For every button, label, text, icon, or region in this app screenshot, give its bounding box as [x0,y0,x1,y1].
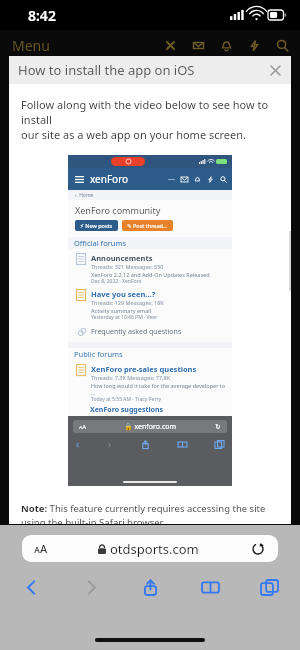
button[interactable]: Back [14,570,48,604]
staticText: 8:42 [28,6,56,25]
staticText: ✎ Post thread… [127,222,168,229]
staticText: Menu [12,36,50,55]
staticText: Public forums [74,349,123,359]
staticText: Follow along with the video below to see… [21,97,279,142]
button[interactable]: Whats new [244,35,264,55]
button[interactable]: Close dialog [265,60,285,80]
button[interactable]: Reload [250,541,266,557]
staticText: Activity summary email [91,307,152,314]
staticText: ᴀA [34,541,48,556]
staticText: XenForo pre-sales questions [91,364,197,374]
button[interactable]: Have you seen...? [76,289,227,321]
staticText: ‹ [76,437,80,451]
staticText: Have you seen...? [91,289,156,299]
staticText: otdsports.com [110,540,199,558]
staticText: Dec 8, 2022 · XenForo [91,278,142,285]
staticText: Note: This feature currently requires ac… [21,502,279,524]
button[interactable]: XenForo pre-sales questions [76,364,227,403]
staticText: xenForo [90,172,129,186]
button[interactable]: Mail [188,35,208,55]
staticText: How to install the app on iOS [18,61,195,79]
button[interactable]: ᴀA [22,535,278,562]
staticText: Yesterday at 10:46 PM · Veer [91,314,158,321]
staticText: XenForo community [75,204,161,216]
staticText: 🔒 xenforo.com [124,422,177,432]
staticText: Threads: 321 Messages: 550 [91,263,164,270]
button[interactable]: Forward [74,570,108,604]
staticText: Threads: 7.3K Messages: 77.8K [91,374,171,381]
staticText: Announcements [91,253,153,263]
staticText: How long would it take for the average d… [91,382,227,396]
staticText: ⚡ New posts [80,222,113,229]
button[interactable]: Bookmarks [193,570,227,604]
button[interactable]: Alerts [216,35,236,55]
staticText: XenForo 2.2.12 and Add-On Updates Releas… [91,271,210,278]
staticText: Frequently asked questions [91,327,182,337]
button[interactable]: Close [160,35,180,55]
staticText: XenForo suggestions [90,405,163,415]
button[interactable]: Menu [10,34,52,57]
staticText: Official forums [74,238,127,248]
button[interactable]: Share [133,570,167,604]
staticText: › [108,437,112,451]
staticText: ᴀA [79,423,86,431]
staticText: Today at 5:55 AM · Tracy Perry [91,396,162,403]
staticText: Threads: 129 Messages: 18K [91,299,164,306]
button[interactable]: Search [272,35,292,55]
staticText: ‹ Home [75,192,94,199]
button[interactable]: Tabs [252,570,286,604]
button[interactable]: Announcements [76,253,227,285]
staticText: ↻ [215,423,221,431]
